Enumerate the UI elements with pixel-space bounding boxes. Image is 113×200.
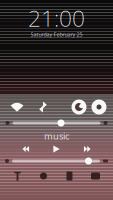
button[interactable]: Play [47,144,65,154]
button[interactable]: Do Not Disturb [69,97,89,117]
button[interactable]: Timer [30,168,56,184]
button[interactable]: Bluetooth [30,97,56,117]
button[interactable]: Rotation Lock [89,97,109,117]
staticText: T [14,168,21,184]
button[interactable]: Camera [82,168,108,184]
button[interactable]: Calculator [56,168,82,184]
button[interactable]: Wi-Fi [4,97,30,117]
button[interactable]: Flashlight [4,168,30,184]
button[interactable]: Previous track [17,144,35,154]
staticText: music [44,130,69,142]
button[interactable]: Next track [78,144,96,154]
staticText: 21:00 [28,3,85,33]
staticText: Saturday February 25 [30,31,82,38]
